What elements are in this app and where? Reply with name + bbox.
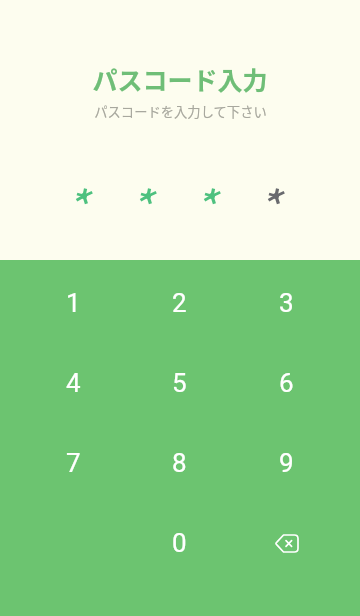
staticText: パスコードを入力して下さい — [94, 102, 267, 121]
button[interactable]: 3 — [233, 263, 340, 343]
staticText: 3 — [279, 288, 294, 318]
button[interactable]: 0 — [126, 503, 233, 583]
staticText: 6 — [279, 368, 294, 398]
staticText: 1 — [66, 288, 81, 318]
staticText: 7 — [66, 448, 81, 478]
staticText: 8 — [172, 448, 187, 478]
staticText: 4 — [66, 368, 81, 398]
staticText: パスコード入力 — [92, 61, 268, 97]
staticText: 9 — [279, 448, 294, 478]
staticText: 5 — [172, 368, 187, 398]
button[interactable]: 6 — [233, 343, 340, 423]
button[interactable]: 4 — [20, 343, 126, 423]
staticText: 2 — [172, 288, 187, 318]
button[interactable]: 5 — [126, 343, 233, 423]
button[interactable]: 8 — [126, 423, 233, 503]
button[interactable]: 9 — [233, 423, 340, 503]
button[interactable]: 1 — [20, 263, 126, 343]
button[interactable]: 2 — [126, 263, 233, 343]
staticText: 0 — [172, 528, 187, 558]
button[interactable]: 7 — [20, 423, 126, 503]
button[interactable]: Delete — [233, 503, 340, 583]
